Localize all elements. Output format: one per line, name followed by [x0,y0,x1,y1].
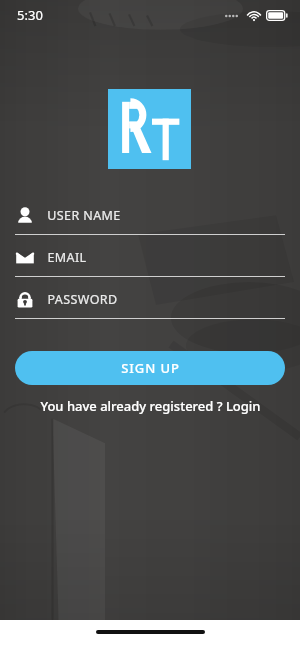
other: Password [15,290,35,310]
staticText: You have already registered ? Login [40,397,261,415]
other: Email [15,248,35,268]
staticText: USER NAME [47,207,121,224]
other: User name [15,206,35,226]
button[interactable]: RT logo [108,89,191,169]
staticText: PASSWORD [47,291,118,308]
button[interactable]: User name [0,197,300,239]
button[interactable]: You have already registered ? Login [0,394,300,418]
staticText: EMAIL [47,249,87,266]
staticText: SIGN UP [121,359,180,377]
button[interactable]: Email [0,239,300,281]
button[interactable]: SIGN UP [15,351,285,385]
staticText: 5:30 [17,6,43,24]
button[interactable]: Password [0,281,300,323]
